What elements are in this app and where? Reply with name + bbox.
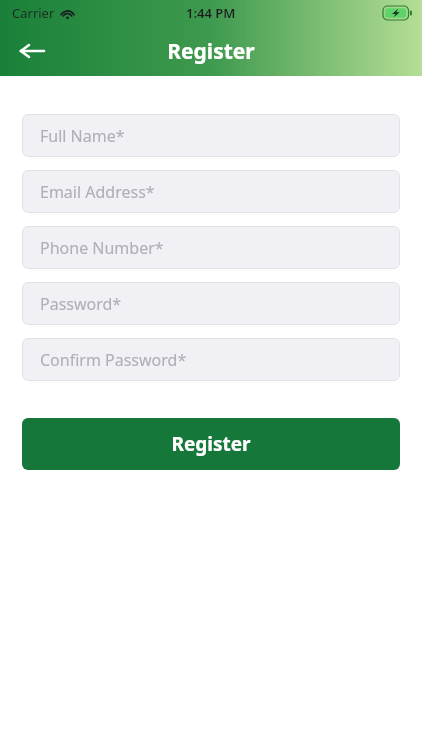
staticText: Email Address* xyxy=(40,181,155,203)
staticText: Phone Number* xyxy=(40,237,164,259)
button[interactable]: Full Name* xyxy=(22,114,400,157)
staticText: Carrier xyxy=(12,4,55,22)
button[interactable]: Confirm Password* xyxy=(22,338,400,381)
staticText: 1:44 PM xyxy=(186,4,236,22)
staticText: Register xyxy=(171,431,251,457)
staticText: Password* xyxy=(40,293,122,315)
button[interactable]: Register xyxy=(22,418,400,470)
button[interactable]: Phone Number* xyxy=(22,226,400,269)
staticText: Full Name* xyxy=(40,125,125,147)
staticText: Register xyxy=(167,37,255,66)
button[interactable]: Email Address* xyxy=(22,170,400,213)
staticText: Confirm Password* xyxy=(40,349,187,371)
button[interactable]: Password* xyxy=(22,282,400,325)
button[interactable]: Back xyxy=(10,29,54,73)
